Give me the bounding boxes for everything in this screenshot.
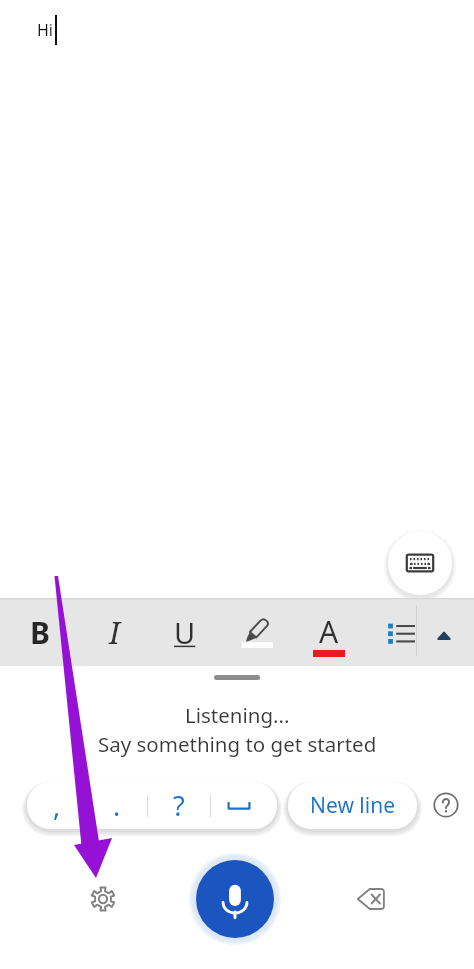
button[interactable]: Italic — [91, 608, 139, 656]
button[interactable]: , — [27, 782, 87, 829]
button[interactable]: Help — [429, 788, 463, 822]
button[interactable]: Switch to keyboard — [388, 531, 452, 595]
staticText: B — [30, 612, 50, 653]
staticText: , — [53, 787, 61, 824]
button[interactable]: Backspace — [347, 875, 395, 923]
button[interactable]: Bulleted list — [376, 608, 424, 656]
button[interactable]: Space — [211, 784, 267, 828]
staticText: Say something to get started — [98, 730, 377, 758]
staticText: A — [319, 611, 339, 652]
staticText: ? — [173, 787, 185, 824]
staticText: U — [174, 613, 196, 652]
button[interactable]: Underline — [161, 608, 209, 656]
staticText: I — [109, 612, 121, 653]
button[interactable]: Bold — [16, 608, 64, 656]
button[interactable]: Highlight — [234, 608, 282, 656]
staticText: . — [113, 787, 121, 824]
button[interactable]: Settings — [79, 875, 127, 923]
staticText: Hi — [37, 19, 53, 41]
staticText: New line — [310, 791, 396, 820]
button[interactable]: Microphone — [196, 860, 274, 938]
staticText: Listening... — [185, 701, 290, 729]
button[interactable]: Collapse toolbar — [420, 608, 468, 656]
button[interactable]: New line — [288, 782, 417, 829]
button[interactable]: . — [87, 782, 147, 829]
button[interactable]: ? — [148, 782, 210, 829]
button[interactable]: Text color — [305, 608, 353, 656]
